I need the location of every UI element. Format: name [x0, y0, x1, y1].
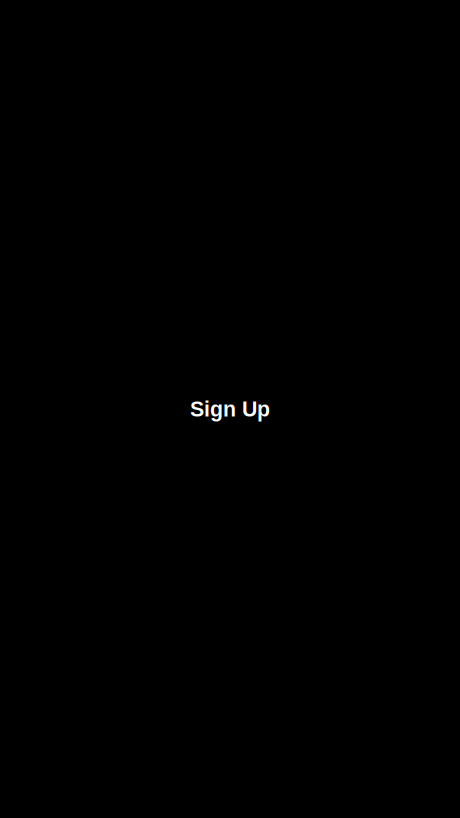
staticText: Sign Up	[190, 397, 270, 421]
